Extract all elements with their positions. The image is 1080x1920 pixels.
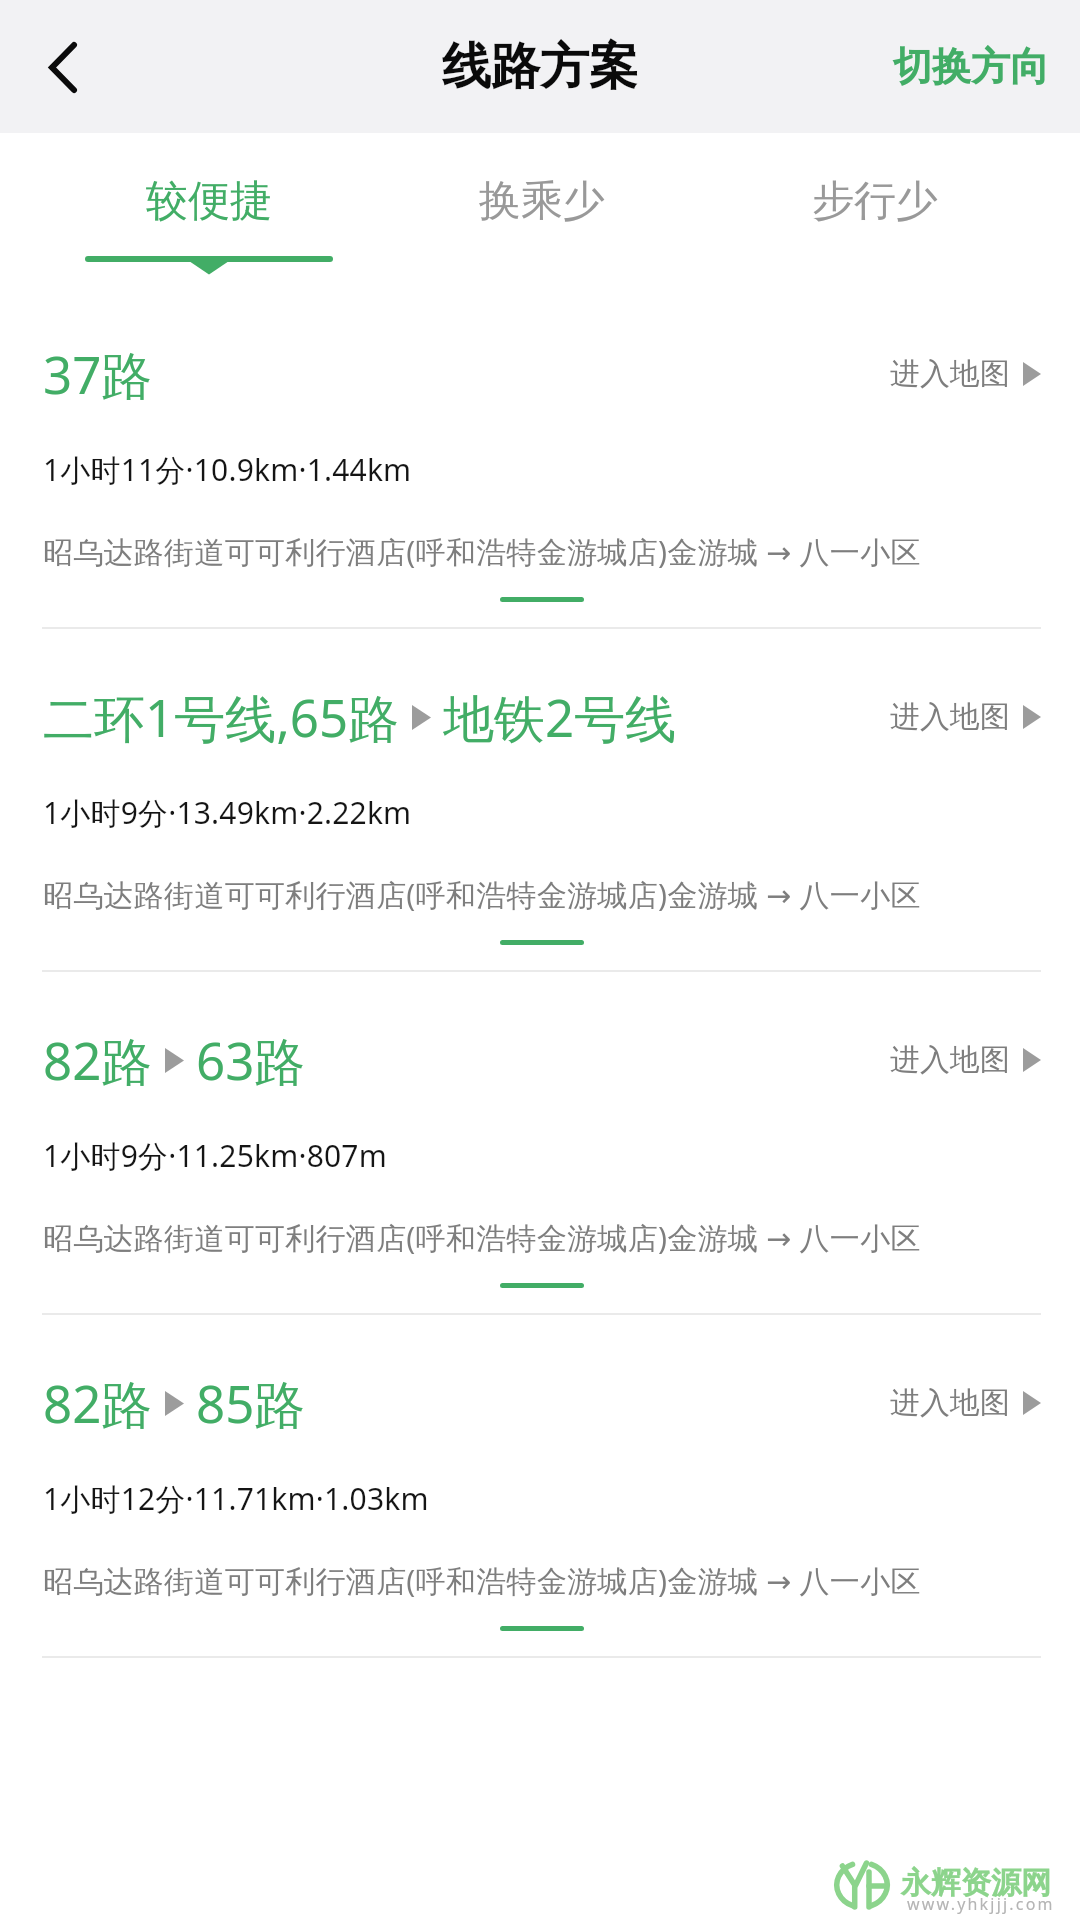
staticText: 进入地图 <box>890 698 1010 736</box>
button[interactable]: 二环1号线,65路 <box>0 629 1080 972</box>
staticText: 1小时9分·13.49km·2.22km <box>43 792 412 833</box>
button[interactable]: 较便捷 <box>42 133 375 286</box>
button[interactable]: 82路 <box>0 972 1080 1315</box>
staticText: 步行少 <box>812 175 938 228</box>
button[interactable]: 切换方向 <box>881 30 1061 103</box>
staticText: 1小时11分·10.9km·1.44km <box>43 449 412 490</box>
staticText: 1小时9分·11.25km·807m <box>43 1135 387 1176</box>
button[interactable]: 进入地图 <box>890 1031 1041 1089</box>
button[interactable]: 进入地图 <box>890 345 1041 403</box>
button[interactable]: 进入地图 <box>890 688 1041 746</box>
staticText: 昭乌达路街道可可利行酒店(呼和浩特金游城店)金游城 → 八一小区 <box>43 1217 921 1258</box>
staticText: 永辉资源网 <box>901 1864 1051 1902</box>
button[interactable]: 步行少 <box>708 133 1041 286</box>
staticText: 进入地图 <box>890 1041 1010 1079</box>
staticText: 37路 <box>43 339 153 409</box>
staticText: 63路 <box>196 1025 306 1095</box>
button[interactable]: 换乘少 <box>375 133 708 286</box>
staticText: 昭乌达路街道可可利行酒店(呼和浩特金游城店)金游城 → 八一小区 <box>43 1560 921 1601</box>
staticText: 换乘少 <box>479 175 605 228</box>
staticText: 进入地图 <box>890 1384 1010 1422</box>
staticText: 切换方向 <box>893 42 1049 91</box>
staticText: 昭乌达路街道可可利行酒店(呼和浩特金游城店)金游城 → 八一小区 <box>43 531 921 572</box>
staticText: 较便捷 <box>146 175 272 228</box>
staticText: www.yhkjjj.com <box>907 1893 1055 1915</box>
staticText: 二环1号线,65路 <box>43 682 400 752</box>
button[interactable]: Back <box>23 27 103 107</box>
staticText: 线路方案 <box>442 36 638 98</box>
staticText: 85路 <box>196 1368 306 1438</box>
button[interactable]: 82路 <box>0 1315 1080 1658</box>
button[interactable]: 37路 <box>0 286 1080 629</box>
staticText: 昭乌达路街道可可利行酒店(呼和浩特金游城店)金游城 → 八一小区 <box>43 874 921 915</box>
staticText: 1小时12分·11.71km·1.03km <box>43 1478 429 1519</box>
staticText: 进入地图 <box>890 355 1010 393</box>
staticText: 地铁2号线 <box>443 682 677 752</box>
staticText: 82路 <box>43 1368 153 1438</box>
staticText: 82路 <box>43 1025 153 1095</box>
button[interactable]: 进入地图 <box>890 1374 1041 1432</box>
